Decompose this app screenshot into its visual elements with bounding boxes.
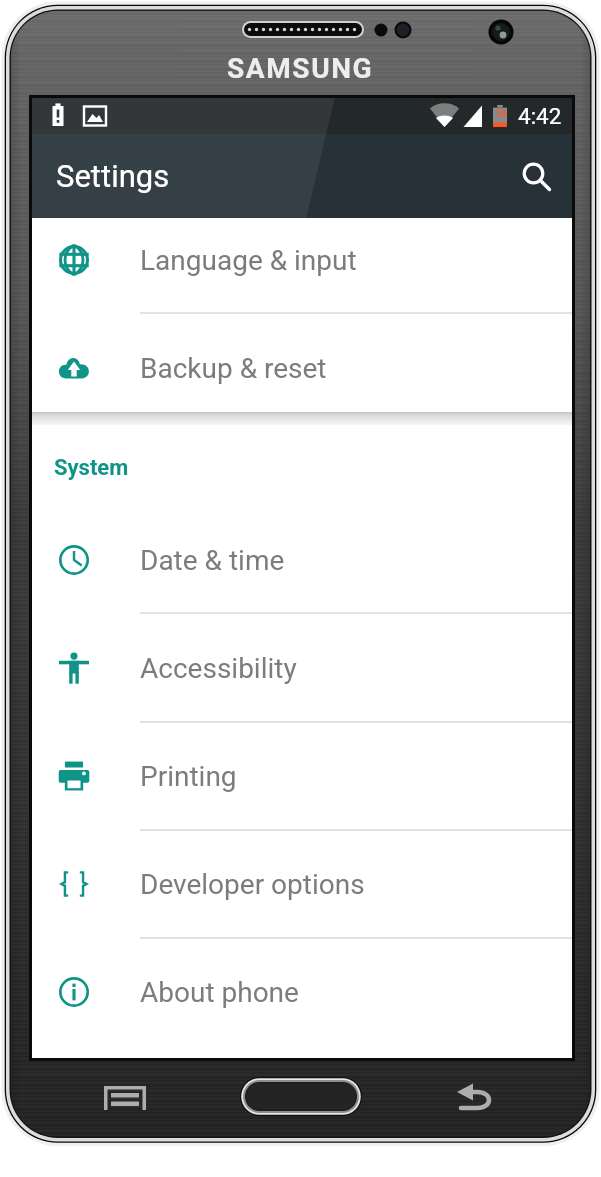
button[interactable]: Backup & reset bbox=[32, 313, 572, 412]
staticText: 14 bbox=[495, 108, 507, 120]
staticText: 4:42 bbox=[518, 103, 562, 129]
staticText: Language & input bbox=[140, 244, 357, 277]
button[interactable]: Accessibility bbox=[32, 613, 572, 721]
staticText: System bbox=[54, 455, 129, 481]
staticText: Developer options bbox=[140, 868, 365, 901]
staticText: Settings bbox=[56, 158, 170, 194]
button[interactable]: About phone bbox=[32, 937, 572, 1045]
staticText: SAMSUNG bbox=[227, 52, 374, 85]
staticText: Date & time bbox=[140, 544, 285, 577]
button[interactable]: Language & input bbox=[32, 218, 572, 313]
button[interactable]: System bbox=[54, 455, 129, 481]
button[interactable]: Developer options bbox=[32, 829, 572, 937]
staticText: Accessibility bbox=[140, 652, 297, 685]
staticText: Backup & reset bbox=[140, 352, 327, 385]
button[interactable]: Date & time bbox=[32, 504, 572, 613]
staticText: Printing bbox=[140, 760, 237, 793]
button[interactable]: Printing bbox=[32, 721, 572, 829]
staticText: About phone bbox=[140, 976, 299, 1009]
button[interactable]: Search bbox=[510, 149, 564, 203]
